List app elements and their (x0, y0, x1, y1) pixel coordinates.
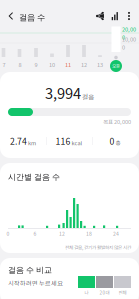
button[interactable]: Back (8, 12, 14, 20)
staticText: 걸음 수 (19, 12, 45, 23)
staticText: 24 (113, 230, 119, 237)
staticText: 시간별 걸음 수 (8, 172, 60, 182)
staticText: 6 (33, 230, 36, 237)
staticText: 2.74 (10, 135, 27, 147)
staticText: 전체 걸음, 걷기가 활발하지 않은 시간 (65, 244, 131, 251)
staticText: 시작하려면 누르세요 (8, 279, 63, 287)
staticText: kcal (70, 139, 82, 147)
staticText: 9 (34, 60, 37, 68)
button[interactable]: More options (128, 12, 130, 20)
staticText: 18 (86, 230, 92, 237)
staticText: 10 (49, 60, 55, 68)
staticText: 10,000 (122, 35, 136, 51)
staticText: 7 (2, 60, 5, 68)
staticText: 오후 (112, 62, 120, 69)
staticText: 12 (81, 60, 87, 68)
staticText: 116 (55, 135, 70, 147)
staticText: 목표 20,000 (103, 117, 131, 125)
staticText: 걸음 (81, 92, 94, 102)
staticText: 0 (6, 230, 9, 237)
staticText: 20대 (99, 289, 109, 296)
staticText: 12 (59, 230, 65, 237)
staticText: 20,000 (122, 25, 136, 41)
button[interactable]: Charts (111, 12, 118, 20)
staticText: 층 (114, 139, 120, 147)
staticText: 8 (18, 60, 21, 68)
staticText: 걸음 수 비교 (8, 265, 52, 275)
staticText: km (27, 139, 36, 147)
staticText: 3,994 (45, 82, 81, 103)
staticText: 전체 (118, 289, 126, 296)
staticText: 0 (109, 135, 114, 147)
button[interactable]: Share (96, 12, 104, 20)
staticText: 13 (97, 60, 103, 68)
staticText: 11 (65, 60, 71, 68)
staticText: 나 (84, 289, 88, 296)
